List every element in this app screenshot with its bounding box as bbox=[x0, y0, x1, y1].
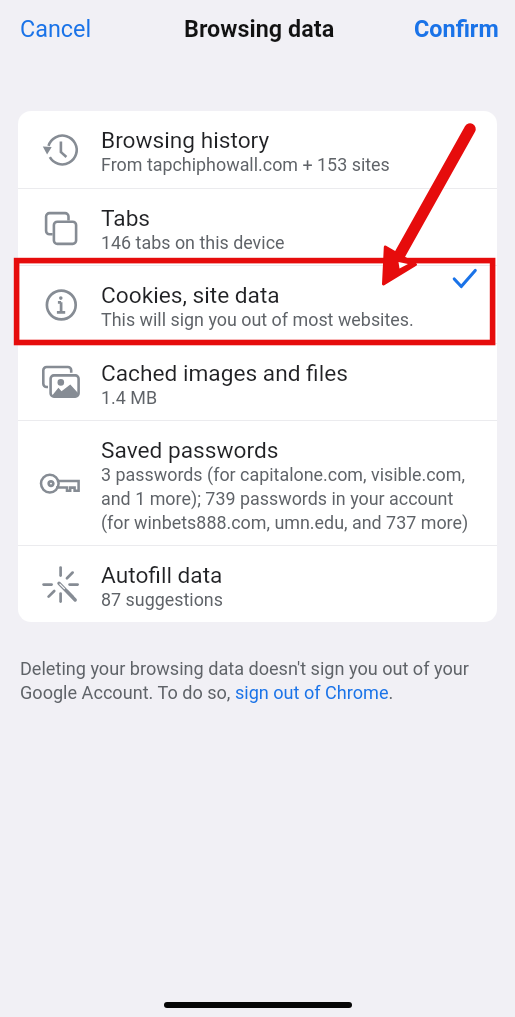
button[interactable]: Deleting your browsing data doesn't sign… bbox=[20, 658, 469, 704]
staticText: Browsing history bbox=[101, 127, 270, 154]
staticText: Saved passwords bbox=[101, 437, 279, 464]
button[interactable]: Autofill data bbox=[18, 546, 497, 622]
staticText: Cancel bbox=[20, 15, 92, 42]
staticText: 3 passwords (for capitalone.com, visible… bbox=[101, 464, 469, 533]
staticText: Cookies, site data bbox=[101, 282, 280, 309]
button[interactable]: Tabs bbox=[18, 189, 497, 265]
staticText: Cached images and files bbox=[101, 360, 348, 387]
staticText: 1.4 MB bbox=[101, 387, 158, 408]
staticText: Autofill data bbox=[101, 562, 223, 589]
button[interactable]: Cookies, site data bbox=[18, 266, 497, 343]
button[interactable]: Cancel bbox=[0, 7, 104, 50]
staticText: This will sign you out of most websites. bbox=[101, 309, 414, 330]
staticText: Confirm bbox=[414, 15, 499, 42]
button[interactable]: Confirm bbox=[402, 7, 515, 50]
button[interactable]: Browsing history bbox=[18, 111, 497, 188]
staticText: Browsing data bbox=[184, 15, 335, 42]
staticText: Tabs bbox=[101, 205, 151, 232]
staticText: From tapchiphowall.com + 153 sites bbox=[101, 154, 390, 175]
staticText: 87 suggestions bbox=[101, 589, 223, 610]
button[interactable]: Cached images and files bbox=[18, 344, 497, 420]
staticText: Deleting your browsing data doesn't sign… bbox=[20, 658, 469, 704]
button[interactable]: Saved passwords bbox=[18, 421, 497, 545]
staticText: 146 tabs on this device bbox=[101, 232, 285, 253]
other: Selected bbox=[452, 266, 477, 291]
